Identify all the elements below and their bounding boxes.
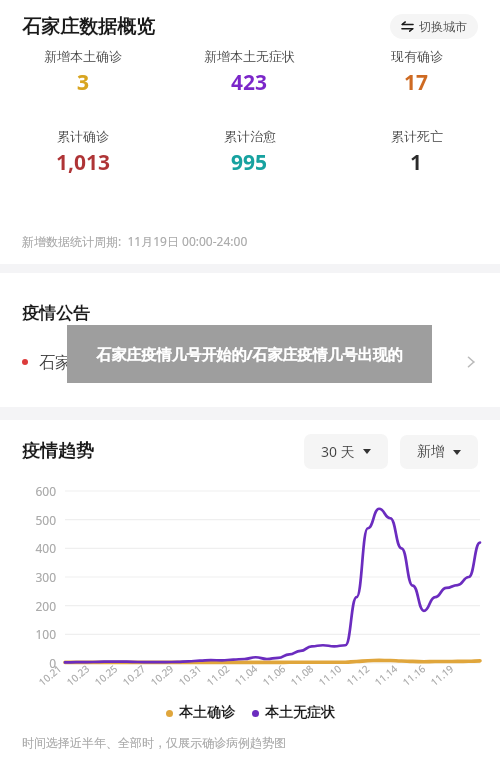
staticText: 10.31 — [175, 661, 204, 689]
staticText: 995 — [231, 148, 268, 177]
staticText: 11.04 — [231, 661, 260, 689]
staticText: 400 — [0, 540, 56, 556]
staticText: 11.02 — [203, 661, 232, 689]
button[interactable]: 新增本土无症状 — [166, 48, 333, 97]
staticText: 0 — [0, 655, 56, 671]
staticText: 疫情公告 — [22, 303, 90, 324]
staticText: 石家庄疫情几号开始的/石家庄疫情几号出现的 — [96, 344, 403, 364]
staticText: 新增本土确诊 — [44, 48, 122, 64]
button[interactable]: 累计死亡 — [333, 128, 500, 177]
staticText: 11.08 — [287, 661, 316, 689]
staticText: 切换城市 — [419, 19, 467, 34]
staticText: 现有确诊 — [391, 48, 443, 64]
staticText: 423 — [231, 68, 268, 97]
staticText: 累计确诊 — [57, 128, 109, 144]
button[interactable]: 累计确诊 — [0, 128, 166, 177]
staticText: 累计死亡 — [391, 128, 443, 144]
staticText: 本土无症状 — [265, 704, 335, 722]
staticText: 3 — [77, 68, 90, 97]
staticText: 10.27 — [119, 661, 148, 689]
staticText: 500 — [0, 512, 56, 528]
other: 切换城市 — [401, 20, 414, 33]
staticText: 1 — [410, 148, 423, 177]
staticText: 10.21 — [35, 661, 64, 689]
button[interactable]: 新增 — [400, 435, 478, 469]
staticText: 本土确诊 — [179, 704, 235, 722]
staticText: 600 — [0, 483, 56, 499]
button[interactable]: 累计治愈 — [166, 128, 333, 177]
other: 查看更多 — [464, 355, 478, 369]
button[interactable]: 30 天 — [304, 434, 388, 469]
staticText: 新增本土无症状 — [204, 48, 295, 64]
staticText: 30 天 — [321, 442, 355, 461]
staticText: 石家庄昨日新增本土“3+423” — [39, 351, 464, 373]
button[interactable]: 新增本土确诊 — [0, 48, 166, 97]
staticText: 新增 — [417, 443, 445, 461]
staticText: 17 — [404, 68, 429, 97]
button[interactable]: 石家庄昨日新增本土“3+423” — [0, 351, 500, 373]
staticText: 10.23 — [63, 661, 92, 689]
staticText: 时间选择近半年、全部时，仅展示确诊病例趋势图 — [22, 735, 286, 750]
staticText: 10.25 — [91, 661, 120, 689]
staticText: 11.14 — [371, 661, 400, 689]
button[interactable]: 切换城市 — [390, 14, 478, 39]
staticText: 11.10 — [315, 661, 344, 689]
staticText: 300 — [0, 569, 56, 585]
staticText: 100 — [0, 626, 56, 642]
staticText: 11.12 — [343, 661, 372, 689]
staticText: 11.19 — [427, 661, 456, 689]
staticText: 疫情趋势 — [22, 440, 94, 463]
staticText: 1,013 — [56, 148, 111, 177]
staticText: 石家庄数据概览 — [22, 15, 155, 39]
staticText: 11.16 — [399, 661, 428, 689]
staticText: 新增数据统计周期: 11月19日 00:00-24:00 — [22, 233, 248, 249]
staticText: 11.06 — [259, 661, 288, 689]
staticText: 10.29 — [147, 661, 176, 689]
button[interactable]: 现有确诊 — [333, 48, 500, 97]
staticText: 累计治愈 — [224, 128, 276, 144]
staticText: 200 — [0, 598, 56, 614]
